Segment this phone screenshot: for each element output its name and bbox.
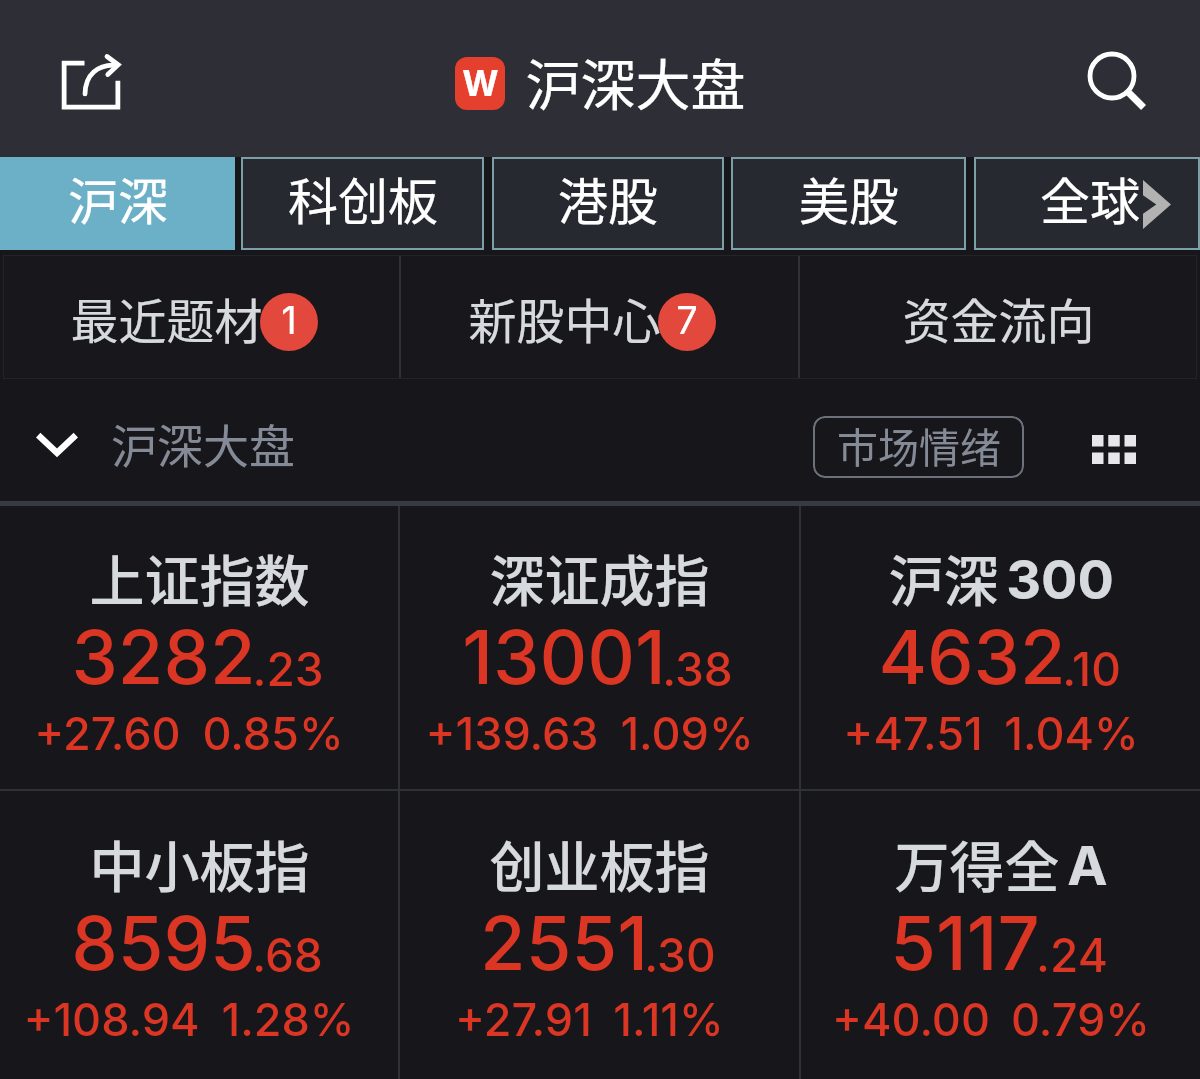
button[interactable]: 沪深 bbox=[801, 506, 1200, 789]
staticText: +27.91 bbox=[455, 992, 592, 1046]
staticText: +27.60 bbox=[34, 706, 181, 760]
staticText: 0.79% bbox=[1011, 992, 1150, 1046]
button[interactable]: 上证指数 bbox=[0, 506, 398, 789]
staticText: 全球 bbox=[1040, 162, 1140, 234]
staticText: 5117 bbox=[890, 898, 1040, 988]
button[interactable]: Search bbox=[1064, 28, 1160, 124]
staticText: 沪深大盘 bbox=[525, 41, 746, 121]
staticText: 1.11% bbox=[613, 992, 724, 1046]
button[interactable]: 创业板指 bbox=[400, 791, 799, 1079]
staticText: 万得全 bbox=[894, 823, 1060, 903]
staticText: 沪深大盘 bbox=[111, 410, 295, 477]
button[interactable]: Grid view bbox=[1070, 413, 1158, 481]
staticText: 1.28% bbox=[221, 992, 355, 1046]
button[interactable]: 港股 bbox=[492, 157, 724, 250]
button[interactable]: 深证成指 bbox=[400, 506, 799, 789]
staticText: 3282 bbox=[71, 612, 256, 702]
staticText: 2551 bbox=[480, 898, 648, 988]
button[interactable]: 新股中心 bbox=[401, 255, 798, 379]
staticText: 沪深 bbox=[888, 537, 999, 617]
staticText: +108.94 bbox=[23, 992, 200, 1046]
staticText: 资金流向 bbox=[902, 283, 1095, 353]
staticText: .38 bbox=[662, 641, 733, 697]
staticText: 300 bbox=[1006, 547, 1114, 612]
staticText: 1.09% bbox=[620, 706, 754, 760]
staticText: .23 bbox=[252, 641, 324, 697]
staticText: .24 bbox=[1036, 927, 1108, 983]
staticText: 市场情绪 bbox=[837, 416, 1001, 474]
button[interactable]: 美股 bbox=[731, 157, 966, 250]
button[interactable]: 沪深 bbox=[0, 157, 235, 250]
button[interactable]: 资金流向 bbox=[800, 255, 1197, 379]
button[interactable]: 中小板指 bbox=[0, 791, 398, 1079]
staticText: 港股 bbox=[558, 162, 658, 234]
button[interactable]: 沪深大盘 bbox=[10, 404, 295, 484]
staticText: 深证成指 bbox=[489, 537, 710, 617]
staticText: .10 bbox=[1062, 641, 1121, 697]
staticText: 1 bbox=[281, 297, 297, 343]
staticText: 上证指数 bbox=[89, 537, 310, 617]
staticText: +47.51 bbox=[843, 706, 983, 760]
button[interactable]: 市场情绪 bbox=[813, 416, 1024, 478]
staticText: +139.63 bbox=[425, 706, 599, 760]
staticText: 13001 bbox=[462, 612, 666, 702]
button[interactable]: 全球 bbox=[974, 157, 1200, 250]
staticText: 最近题材 bbox=[70, 283, 263, 353]
staticText: 1.04% bbox=[1004, 706, 1139, 760]
staticText: .68 bbox=[252, 927, 323, 983]
staticText: +40.00 bbox=[832, 992, 990, 1046]
staticText: 新股中心 bbox=[468, 283, 661, 353]
staticText: 4632 bbox=[878, 612, 1066, 702]
button[interactable]: 万得全 bbox=[801, 791, 1200, 1079]
staticText: W bbox=[462, 62, 499, 104]
staticText: 沪深 bbox=[68, 162, 168, 234]
staticText: .30 bbox=[644, 927, 716, 983]
button[interactable]: Share bbox=[21, 31, 121, 127]
staticText: 创业板指 bbox=[489, 823, 710, 903]
staticText: A bbox=[1067, 833, 1108, 898]
staticText: 0.85% bbox=[202, 706, 344, 760]
staticText: 美股 bbox=[799, 162, 899, 234]
staticText: 8595 bbox=[71, 898, 256, 988]
staticText: 科创板 bbox=[288, 162, 438, 234]
staticText: 中小板指 bbox=[89, 823, 310, 903]
button[interactable]: 科创板 bbox=[241, 157, 484, 250]
staticText: 7 bbox=[676, 297, 698, 343]
button[interactable]: 最近题材 bbox=[3, 255, 399, 379]
